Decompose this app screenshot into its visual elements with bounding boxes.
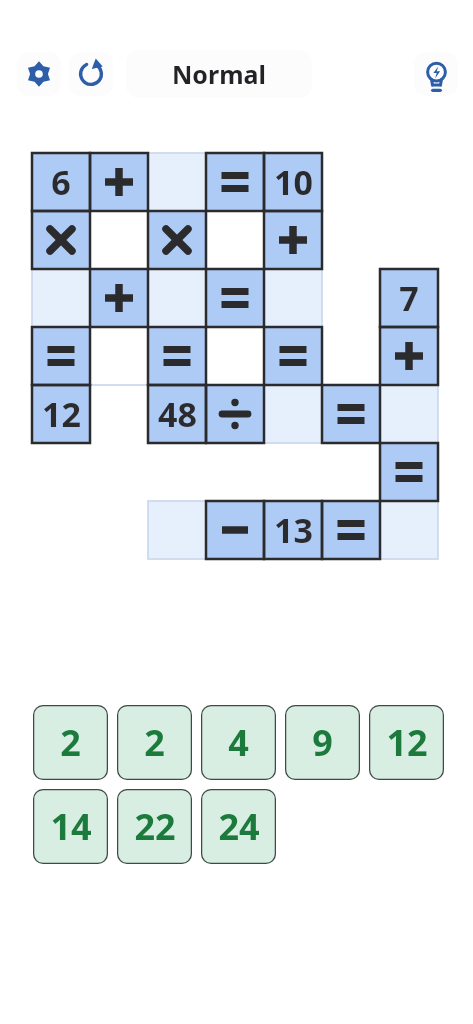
button[interactable] (322, 385, 380, 443)
button[interactable] (90, 153, 148, 211)
button[interactable]: 48 (148, 385, 206, 443)
button[interactable] (206, 385, 264, 443)
button[interactable]: 6 (32, 153, 90, 211)
staticText: 12 (386, 718, 428, 767)
button[interactable]: Restart (69, 52, 113, 96)
button[interactable] (380, 327, 438, 385)
button[interactable] (32, 327, 90, 385)
button[interactable] (322, 501, 380, 559)
staticText: 7 (399, 275, 419, 321)
button[interactable] (148, 327, 206, 385)
button[interactable]: 10 (264, 153, 322, 211)
button[interactable]: 13 (264, 501, 322, 559)
button[interactable]: 12 (369, 705, 444, 780)
staticText: 4 (228, 718, 249, 767)
button[interactable]: 24 (201, 789, 276, 864)
button[interactable]: 22 (117, 789, 192, 864)
button[interactable] (380, 443, 438, 501)
staticText: 24 (218, 802, 260, 851)
staticText: 13 (274, 507, 313, 553)
button[interactable]: Normal (126, 50, 312, 98)
button[interactable]: 9 (285, 705, 360, 780)
button[interactable]: 7 (380, 269, 438, 327)
button[interactable]: Settings (17, 52, 61, 96)
button[interactable]: 12 (32, 385, 90, 443)
button[interactable] (264, 211, 322, 269)
button[interactable]: 14 (33, 789, 108, 864)
button[interactable]: 4 (201, 705, 276, 780)
button[interactable] (32, 211, 90, 269)
staticText: 6 (51, 159, 71, 205)
button[interactable] (206, 153, 264, 211)
staticText: Normal (172, 57, 266, 91)
staticText: 48 (158, 391, 197, 437)
button[interactable] (90, 269, 148, 327)
button[interactable] (206, 269, 264, 327)
button[interactable]: 2 (117, 705, 192, 780)
staticText: 9 (312, 718, 333, 767)
staticText: 2 (60, 718, 81, 767)
staticText: 12 (42, 391, 81, 437)
staticText: 10 (274, 159, 313, 205)
button[interactable] (206, 501, 264, 559)
button[interactable]: 2 (33, 705, 108, 780)
button[interactable] (148, 211, 206, 269)
staticText: 2 (144, 718, 165, 767)
button[interactable] (264, 327, 322, 385)
staticText: 14 (50, 802, 92, 851)
staticText: 22 (134, 802, 176, 851)
button[interactable]: Hint (414, 52, 458, 96)
